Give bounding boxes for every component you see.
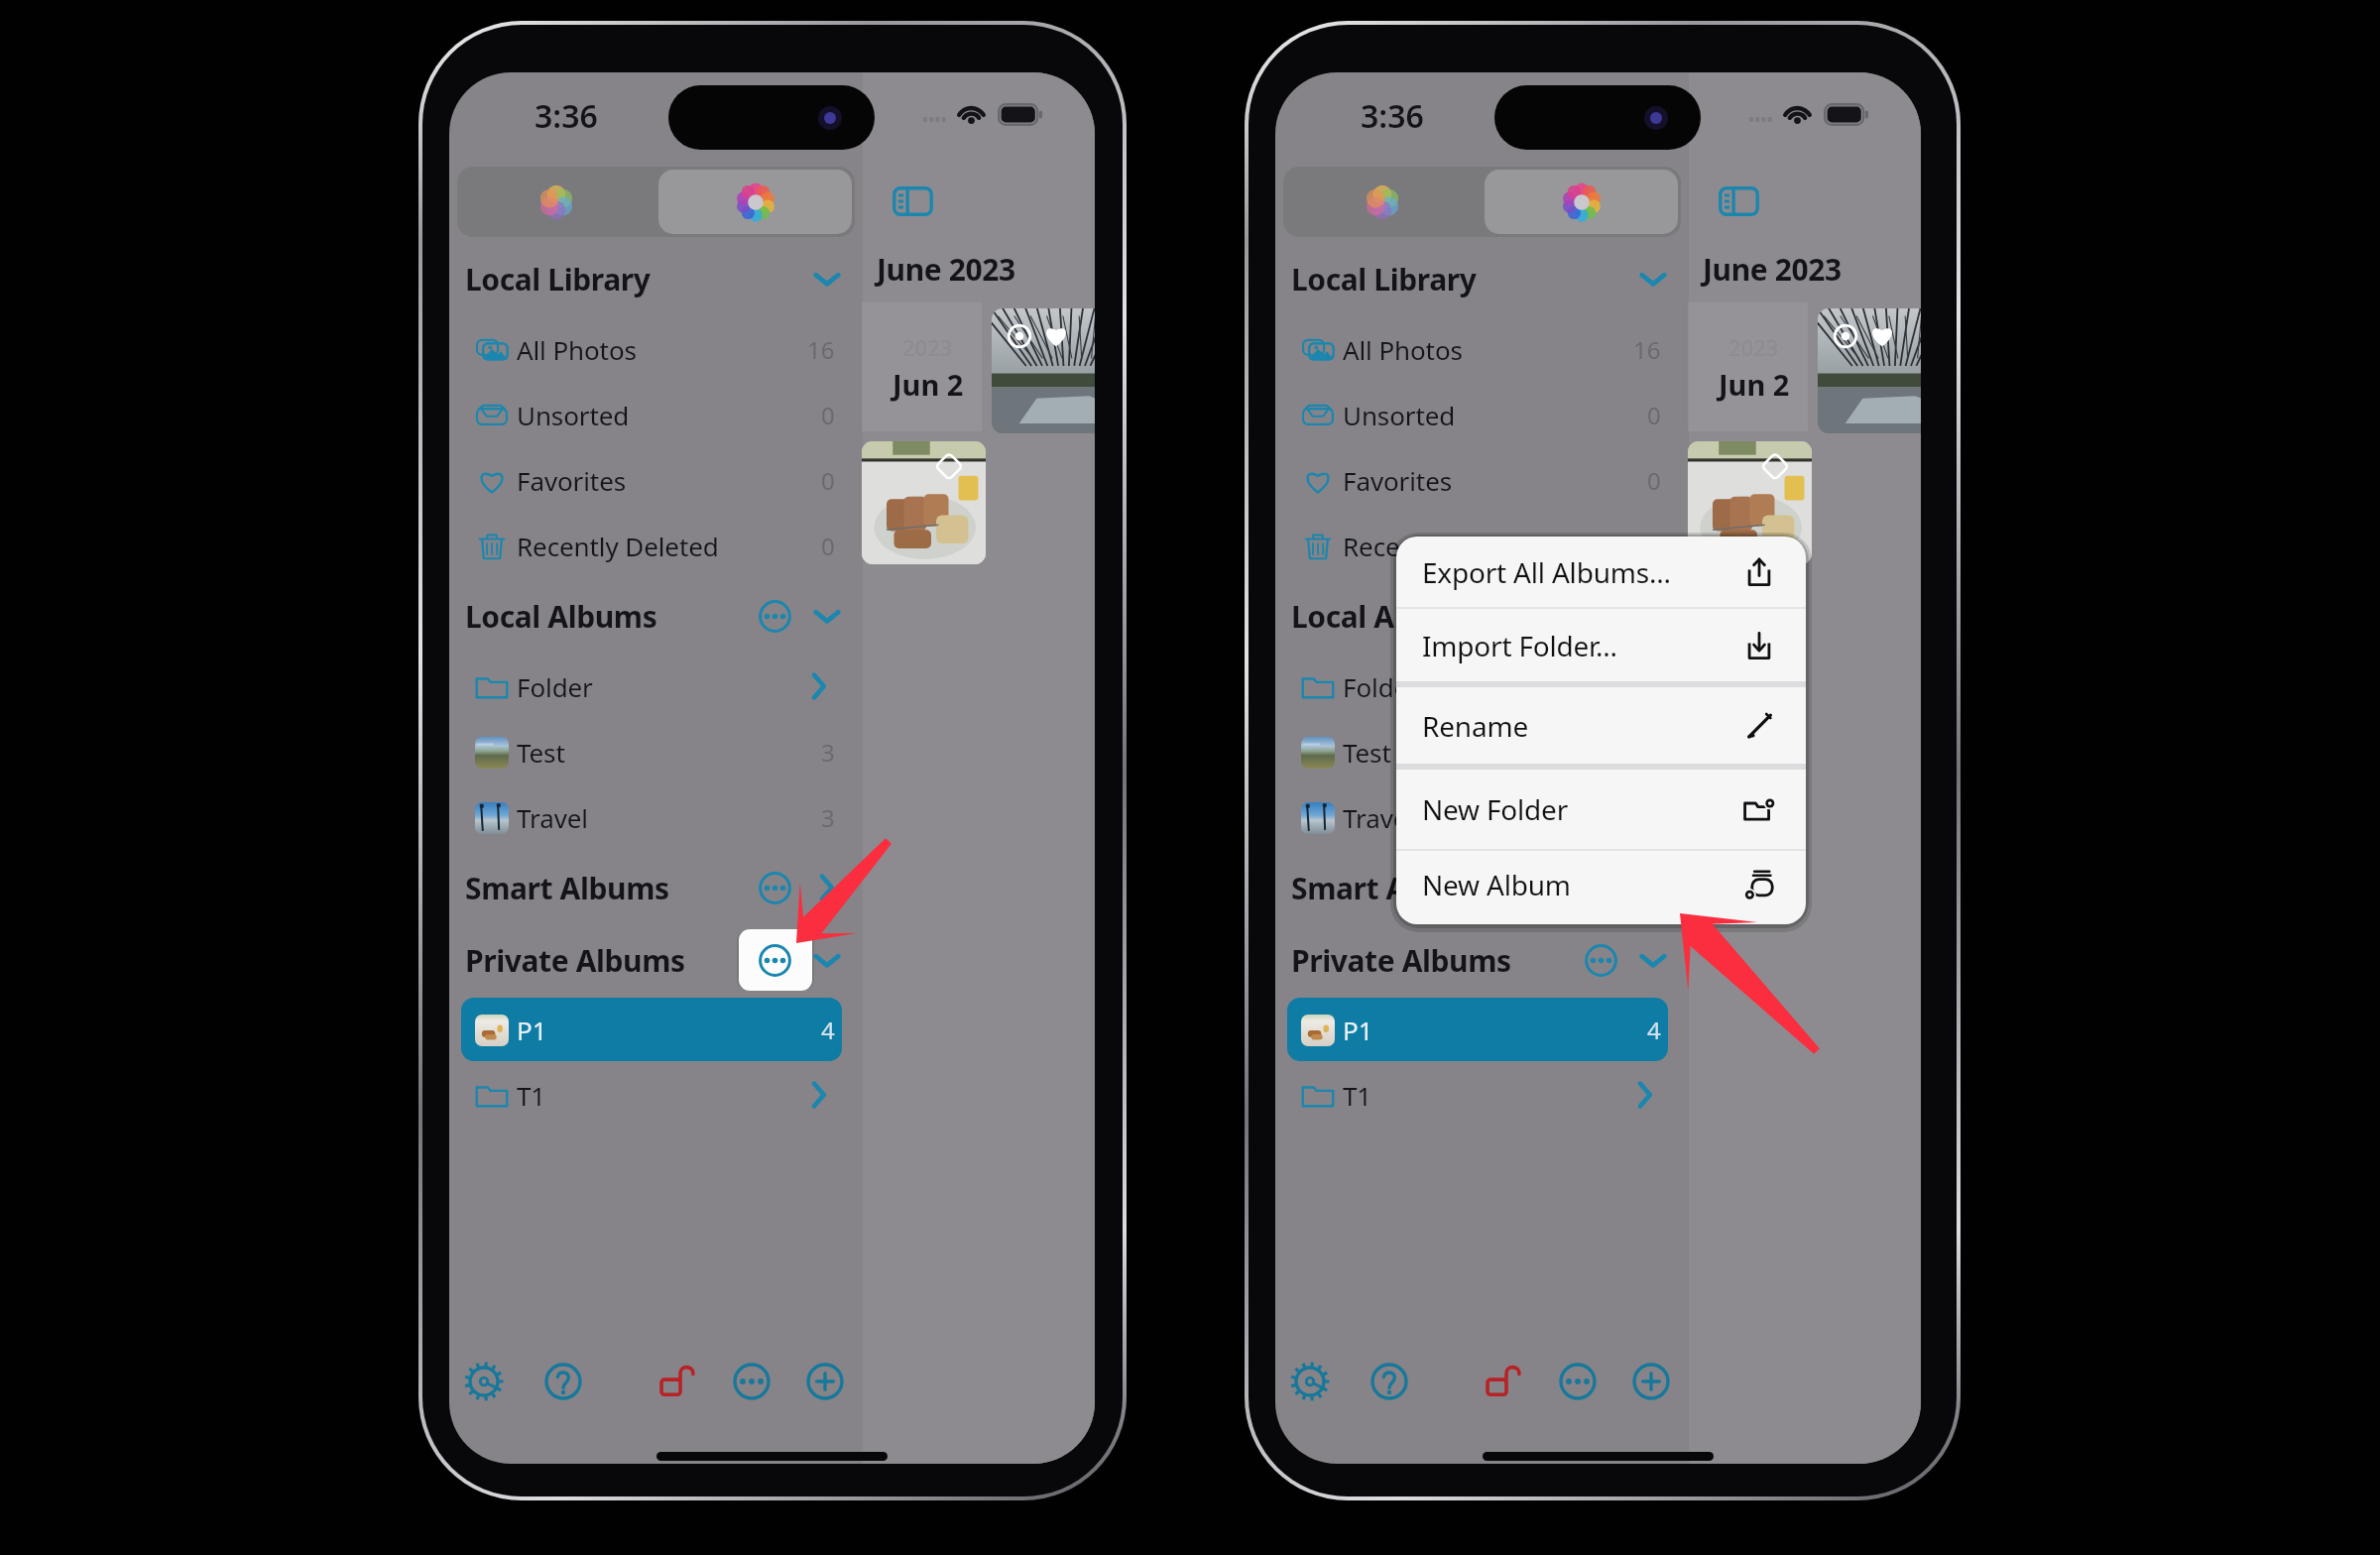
button[interactable]: Private Albums xyxy=(1275,929,1689,991)
staticText: Private Albums xyxy=(465,940,685,981)
button[interactable]: App library xyxy=(658,170,852,234)
button[interactable]: Add xyxy=(1621,1352,1681,1411)
staticText: P1 xyxy=(517,1013,547,1047)
button[interactable]: Smart Albums xyxy=(1275,857,1689,918)
button[interactable]: Private Albums xyxy=(449,929,863,991)
button[interactable]: Photos library xyxy=(1283,167,1482,237)
staticText: Local Library xyxy=(1291,259,1477,299)
button[interactable]: Test xyxy=(1287,720,1668,783)
button[interactable]: Rename xyxy=(1396,687,1806,764)
button[interactable]: Smart Albums xyxy=(449,857,863,918)
button[interactable]: Local Albums xyxy=(449,585,863,647)
staticText: 4 xyxy=(1647,1014,1661,1046)
staticText: Unsorted xyxy=(1343,398,1456,432)
staticText: All Photos xyxy=(1343,332,1463,367)
staticText: Test xyxy=(1343,735,1391,770)
button[interactable]: Help xyxy=(534,1352,593,1411)
button[interactable]: More options xyxy=(744,929,805,991)
staticText: 0 xyxy=(821,530,835,562)
button[interactable]: App library xyxy=(1485,170,1678,234)
button[interactable]: T1 xyxy=(461,1063,842,1127)
button[interactable]: Local Library xyxy=(449,248,863,309)
button[interactable]: Photos library xyxy=(457,167,655,237)
button[interactable]: Photo of a tree xyxy=(992,308,1095,433)
button[interactable]: Collapse section xyxy=(799,251,855,306)
staticText: Import Folder... xyxy=(1422,627,1617,664)
staticText: Export All Albums... xyxy=(1422,553,1671,591)
staticText: 0 xyxy=(1647,530,1661,562)
button[interactable]: More options xyxy=(1570,929,1631,991)
staticText: Travel xyxy=(517,800,588,835)
button[interactable]: 2023 xyxy=(862,302,982,431)
button[interactable]: Export All Albums... xyxy=(1396,537,1806,607)
button[interactable]: Add xyxy=(795,1352,855,1411)
staticText: 0 xyxy=(821,464,835,497)
staticText: 3:36 xyxy=(535,94,598,138)
button[interactable]: Photo of food xyxy=(862,441,986,564)
button[interactable]: Unsorted xyxy=(461,383,842,446)
button[interactable]: New Album xyxy=(1396,851,1806,918)
button[interactable]: Test xyxy=(461,720,842,783)
button[interactable]: Toggle sidebar xyxy=(885,179,940,223)
button[interactable]: Help xyxy=(1360,1352,1419,1411)
button[interactable]: Collapse section xyxy=(799,588,855,644)
staticText: 3 xyxy=(1647,736,1661,769)
button[interactable]: Unlock xyxy=(1474,1352,1533,1411)
button[interactable]: Collapse section xyxy=(1625,932,1681,988)
staticText: Smart Albums xyxy=(465,868,669,908)
button[interactable]: Settings xyxy=(454,1352,514,1411)
staticText: Local Albums xyxy=(1291,596,1484,637)
staticText: Test xyxy=(517,735,565,770)
staticText: New Album xyxy=(1422,866,1571,903)
staticText: T1 xyxy=(1343,1078,1372,1113)
staticText: 0 xyxy=(821,399,835,431)
button[interactable]: Folder xyxy=(1287,655,1668,718)
button[interactable]: Import Folder... xyxy=(1396,609,1806,681)
staticText: Jun 2 xyxy=(892,365,964,404)
button[interactable]: Photo of a tree xyxy=(1818,308,1921,433)
button[interactable]: T1 xyxy=(1287,1063,1668,1127)
button[interactable]: Recently Deleted xyxy=(461,514,842,577)
button[interactable]: Collapse section xyxy=(1625,588,1681,644)
button[interactable]: Expand section xyxy=(799,860,855,915)
button[interactable]: Settings xyxy=(1280,1352,1340,1411)
button[interactable]: Collapse section xyxy=(799,932,855,988)
staticText: Travel xyxy=(1343,800,1414,835)
staticText: New Folder xyxy=(1422,790,1569,828)
button[interactable]: Unsorted xyxy=(1287,383,1668,446)
button[interactable]: P1 xyxy=(1287,998,1668,1061)
button[interactable]: Collapse section xyxy=(1625,251,1681,306)
button[interactable]: Favorites xyxy=(461,448,842,512)
button[interactable]: More options xyxy=(744,585,805,647)
button[interactable]: Local Library xyxy=(1275,248,1689,309)
button[interactable]: More xyxy=(722,1352,781,1411)
button[interactable]: Expand section xyxy=(1625,860,1681,915)
button[interactable]: More options xyxy=(1570,585,1631,647)
button[interactable]: P1 xyxy=(461,998,842,1061)
button[interactable]: Toggle sidebar xyxy=(1711,179,1766,223)
button[interactable]: Recently Deleted xyxy=(1287,514,1668,577)
staticText: June 2023 xyxy=(1703,249,1842,290)
staticText: 16 xyxy=(1633,333,1661,366)
staticText: Recently Deleted xyxy=(517,529,719,563)
button[interactable]: Photo of food xyxy=(1688,441,1812,564)
button[interactable]: Local Albums xyxy=(1275,585,1689,647)
button[interactable]: All Photos xyxy=(461,317,842,381)
staticText: Jun 2 xyxy=(1719,365,1790,404)
button[interactable]: 2023 xyxy=(1688,302,1808,431)
button[interactable]: Unlock xyxy=(648,1352,707,1411)
staticText: Smart Albums xyxy=(1291,868,1495,908)
button[interactable]: Favorites xyxy=(1287,448,1668,512)
staticText: 0 xyxy=(1647,464,1661,497)
button[interactable]: Folder xyxy=(461,655,842,718)
button[interactable]: New Folder xyxy=(1396,770,1806,849)
button[interactable]: More xyxy=(1548,1352,1607,1411)
button[interactable]: All Photos xyxy=(1287,317,1668,381)
button[interactable]: More options xyxy=(744,857,805,918)
button[interactable]: Travel xyxy=(461,785,842,849)
button[interactable]: Travel xyxy=(1287,785,1668,849)
